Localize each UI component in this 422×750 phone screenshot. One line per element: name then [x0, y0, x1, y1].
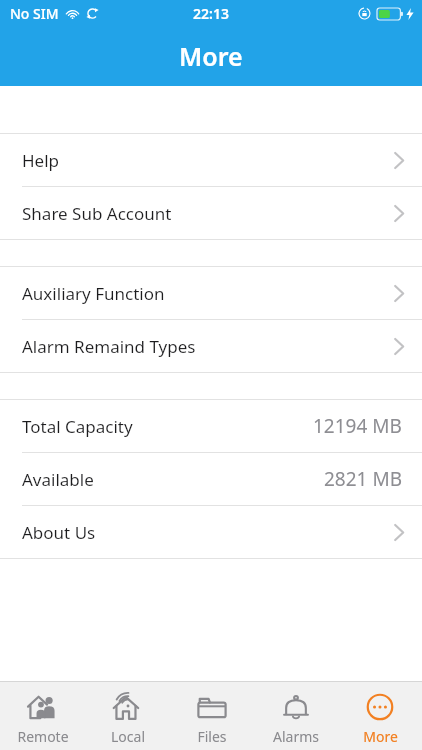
button[interactable]: Files	[170, 682, 254, 750]
staticText: Local	[111, 727, 145, 746]
staticText: 2821 MB	[324, 466, 402, 492]
button[interactable]: Alarms	[254, 682, 338, 750]
button[interactable]: Share Sub Account	[0, 187, 422, 239]
staticText: Help	[22, 149, 60, 172]
button[interactable]: Available	[0, 453, 422, 505]
staticText: Total Capacity	[22, 415, 133, 438]
button[interactable]: Alarm Remaind Types	[0, 320, 422, 372]
button[interactable]: More	[338, 682, 422, 750]
staticText: Share Sub Account	[22, 202, 172, 225]
button[interactable]: Total Capacity	[0, 400, 422, 452]
staticText: Files	[197, 727, 227, 746]
staticText: No SIM	[10, 4, 59, 23]
staticText: Available	[22, 468, 94, 491]
staticText: Alarm Remaind Types	[22, 335, 196, 358]
staticText: About Us	[22, 521, 96, 544]
staticText: More	[179, 39, 243, 73]
button[interactable]: Auxiliary Function	[0, 267, 422, 319]
button[interactable]: Local	[85, 682, 170, 750]
staticText: 12194 MB	[313, 413, 402, 439]
staticText: Remote	[17, 727, 69, 746]
staticText: Alarms	[273, 727, 319, 746]
staticText: More	[363, 727, 398, 746]
button[interactable]: About Us	[0, 506, 422, 558]
staticText: Auxiliary Function	[22, 282, 165, 305]
button[interactable]: Remote	[0, 682, 85, 750]
staticText: 22:13	[193, 4, 229, 23]
button[interactable]: Help	[0, 134, 422, 186]
